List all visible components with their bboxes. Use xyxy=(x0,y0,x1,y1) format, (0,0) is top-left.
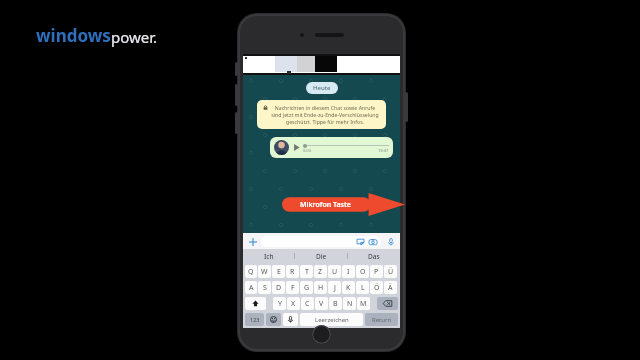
staticText: Ich xyxy=(264,252,274,261)
staticText: Mikrofon Taste xyxy=(300,200,351,210)
button[interactable]: R xyxy=(286,265,299,278)
button[interactable]: Rücktaste xyxy=(377,297,398,310)
button[interactable]: Kamera xyxy=(369,238,377,246)
staticText: W xyxy=(261,267,268,277)
button[interactable]: F xyxy=(286,281,299,294)
button[interactable]: Anhang hinzufügen xyxy=(247,236,258,247)
staticText: F xyxy=(291,283,295,293)
staticText: Nachrichten in diesem Chat sowie Anrufe … xyxy=(270,104,380,125)
staticText: H xyxy=(318,283,324,293)
staticText: Die xyxy=(316,252,327,261)
button[interactable]: M xyxy=(357,297,370,310)
staticText: D xyxy=(276,283,282,293)
staticText: A xyxy=(249,283,254,293)
button[interactable]: Sticker xyxy=(261,236,381,247)
button[interactable]: Play xyxy=(270,137,393,158)
staticText: N xyxy=(347,299,353,309)
button[interactable]: V xyxy=(315,297,328,310)
staticText: U xyxy=(332,267,338,277)
button[interactable]: N xyxy=(343,297,356,310)
staticText: Heute xyxy=(313,84,331,92)
button[interactable]: H xyxy=(314,281,327,294)
button[interactable]: X xyxy=(287,297,300,310)
staticText: 0:03 xyxy=(303,148,311,153)
button[interactable]: K xyxy=(342,281,355,294)
button[interactable]: Home xyxy=(312,325,331,344)
button[interactable]: Umschalttaste xyxy=(245,297,266,310)
button[interactable]: U xyxy=(328,265,341,278)
button[interactable]: Ich xyxy=(243,249,294,263)
button[interactable]: Sprachnachricht aufnehmen xyxy=(385,236,396,247)
button[interactable]: 123 xyxy=(245,313,264,326)
staticText: windows xyxy=(36,24,111,47)
button[interactable]: Leerzeichen xyxy=(300,313,363,326)
button[interactable]: Return xyxy=(365,313,398,326)
button[interactable]: Ä xyxy=(384,281,397,294)
button[interactable]: Ü xyxy=(384,265,397,278)
staticText: G xyxy=(304,283,310,293)
button[interactable]: L xyxy=(356,281,369,294)
button[interactable]: I xyxy=(342,265,355,278)
staticText: K xyxy=(346,283,351,293)
button[interactable]: C xyxy=(301,297,314,310)
staticText: C xyxy=(305,299,310,309)
staticText: M xyxy=(360,299,367,309)
staticText: Ö xyxy=(374,283,380,293)
button[interactable]: E xyxy=(272,265,285,278)
staticText: L xyxy=(361,283,365,293)
button[interactable]: Nachrichten in diesem Chat sowie Anrufe … xyxy=(257,100,386,129)
staticText: power. xyxy=(111,27,158,47)
staticText: V xyxy=(319,299,324,309)
staticText: E xyxy=(277,267,281,277)
button[interactable]: Ö xyxy=(370,281,383,294)
button[interactable]: Heute xyxy=(306,82,338,94)
button[interactable]: Die xyxy=(295,249,347,263)
staticText: R xyxy=(290,267,295,277)
button[interactable]: G xyxy=(300,281,313,294)
staticText: Ü xyxy=(388,267,394,277)
button[interactable]: P xyxy=(370,265,383,278)
button[interactable]: Z xyxy=(314,265,327,278)
staticText: 19:47 xyxy=(378,148,389,153)
button[interactable]: Emoji xyxy=(266,313,281,326)
button[interactable]: Das xyxy=(348,249,400,263)
staticText: J xyxy=(334,283,336,293)
button[interactable]: S xyxy=(258,281,271,294)
button[interactable]: O xyxy=(356,265,369,278)
button[interactable]: Q xyxy=(245,265,257,278)
button[interactable]: Y xyxy=(273,297,286,310)
button[interactable]: Diktieren xyxy=(283,313,298,326)
staticText: B xyxy=(333,299,338,309)
other: Play xyxy=(293,144,300,151)
staticText: Das xyxy=(368,252,380,261)
staticText: X xyxy=(291,299,296,309)
staticText: P xyxy=(374,267,379,277)
button[interactable]: W xyxy=(258,265,271,278)
staticText: I xyxy=(347,267,350,277)
button[interactable]: Sticker xyxy=(357,238,364,245)
button[interactable]: B xyxy=(329,297,342,310)
button[interactable]: A xyxy=(245,281,257,294)
staticText: Y xyxy=(278,299,282,309)
staticText: O xyxy=(360,267,366,277)
staticText: Q xyxy=(248,267,254,277)
staticText: Z xyxy=(318,267,323,277)
staticText: S xyxy=(263,283,267,293)
button[interactable]: T xyxy=(300,265,313,278)
button[interactable]: Mikrofon Taste xyxy=(282,193,405,216)
staticText: Return xyxy=(372,316,392,324)
staticText: T xyxy=(305,267,309,277)
staticText: 123 xyxy=(250,316,260,323)
button[interactable]: D xyxy=(272,281,285,294)
staticText: Leerzeichen xyxy=(315,316,349,324)
button[interactable]: J xyxy=(328,281,341,294)
staticText: Ä xyxy=(388,283,393,293)
